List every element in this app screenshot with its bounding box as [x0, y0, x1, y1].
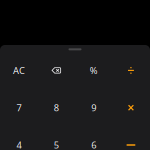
staticText: %: [90, 64, 98, 77]
button[interactable]: Multiply: [112, 89, 150, 126]
button[interactable]: Delete: [38, 52, 75, 89]
button[interactable]: 4: [0, 126, 38, 150]
staticText: 9: [91, 101, 96, 114]
staticText: AC: [13, 64, 25, 77]
button[interactable]: Subtract: [112, 126, 150, 150]
button[interactable]: 6: [75, 126, 112, 150]
button[interactable]: AC: [0, 52, 38, 89]
button[interactable]: 8: [38, 89, 75, 126]
button[interactable]: Divide: [112, 52, 150, 89]
staticText: 4: [17, 139, 22, 150]
button[interactable]: 7: [0, 89, 38, 126]
button[interactable]: 5: [38, 126, 75, 150]
staticText: 7: [17, 101, 22, 114]
button[interactable]: 9: [75, 89, 112, 126]
staticText: 8: [54, 101, 59, 114]
staticText: 5: [54, 139, 59, 150]
staticText: 6: [91, 139, 96, 150]
button[interactable]: %: [75, 52, 112, 89]
